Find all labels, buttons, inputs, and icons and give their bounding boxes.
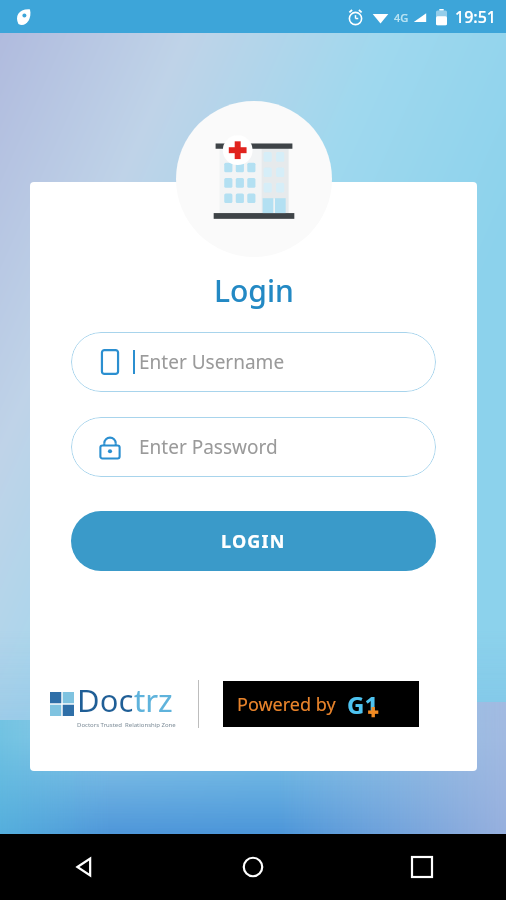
staticText: LOGIN	[221, 529, 286, 554]
button[interactable]: Home	[168, 834, 337, 900]
staticText: Login	[214, 270, 294, 311]
staticText: Enter Password	[139, 434, 278, 460]
staticText: 4G	[394, 10, 409, 25]
staticText: G1	[347, 688, 379, 721]
staticText: Doctors Trusted Relationship Zone	[77, 721, 176, 729]
button[interactable]: LOGIN	[71, 511, 436, 571]
button[interactable]: Recent apps	[337, 834, 506, 900]
staticText: trz	[134, 679, 173, 721]
button[interactable]: Username field	[71, 332, 436, 392]
staticText: Doc	[77, 679, 134, 721]
staticText: 19:51	[455, 6, 496, 28]
staticText: Enter Username	[139, 349, 285, 375]
button[interactable]: Password field	[71, 417, 436, 477]
staticText: Powered by	[237, 692, 336, 717]
button[interactable]: Back	[0, 834, 168, 900]
